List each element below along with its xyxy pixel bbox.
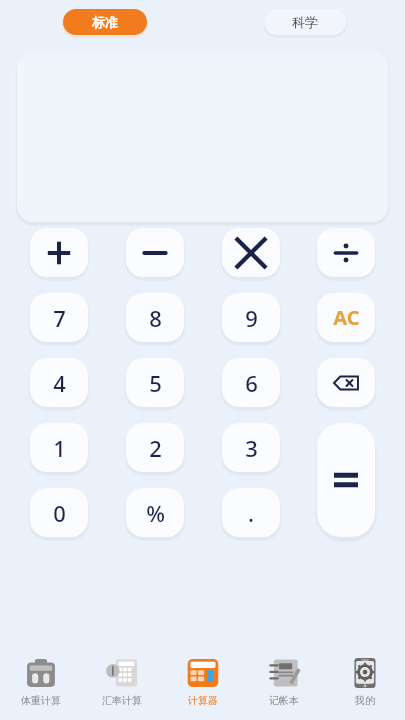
staticText: 标准 [92, 14, 118, 30]
staticText: 体重计算 [21, 694, 61, 707]
button[interactable]: 标准 [63, 9, 147, 35]
staticText: 记帐本 [269, 694, 299, 707]
button[interactable]: Plus [30, 228, 88, 277]
button[interactable]: Backspace [317, 358, 375, 407]
button[interactable]: % [126, 488, 184, 537]
staticText: . [248, 498, 254, 528]
button[interactable]: Divide [317, 228, 375, 277]
button[interactable]: 8 [126, 293, 184, 342]
button[interactable]: 体重计算 [0, 648, 81, 720]
button[interactable]: Equals [317, 423, 375, 537]
button[interactable]: 1 [30, 423, 88, 472]
button[interactable]: 记帐本 [243, 648, 324, 720]
staticText: 0 [53, 498, 66, 528]
button[interactable]: Multiply [222, 228, 280, 277]
button[interactable]: 科学 [264, 9, 346, 35]
staticText: 计算器 [188, 694, 218, 707]
button[interactable]: 5 [126, 358, 184, 407]
button[interactable]: 7 [30, 293, 88, 342]
staticText: 4 [53, 368, 66, 398]
staticText: 我的 [355, 694, 375, 707]
button[interactable]: 2 [126, 423, 184, 472]
staticText: 2 [149, 433, 162, 463]
button[interactable]: Minus [126, 228, 184, 277]
button[interactable]: AC [317, 293, 375, 342]
staticText: 7 [53, 303, 66, 333]
staticText: % [146, 498, 165, 528]
button[interactable]: 3 [222, 423, 280, 472]
staticText: AC [333, 304, 360, 331]
button[interactable]: 计算器 [162, 648, 243, 720]
staticText: 5 [149, 368, 162, 398]
button[interactable]: 0 [30, 488, 88, 537]
button[interactable]: 我的 [324, 648, 405, 720]
button[interactable]: 4 [30, 358, 88, 407]
staticText: 9 [245, 303, 258, 333]
staticText: 1 [53, 433, 66, 463]
button[interactable]: . [222, 488, 280, 537]
staticText: 科学 [292, 14, 318, 30]
staticText: 8 [149, 303, 162, 333]
staticText: 3 [245, 433, 258, 463]
button[interactable]: 9 [222, 293, 280, 342]
button[interactable]: 6 [222, 358, 280, 407]
staticText: 汇率计算 [102, 694, 142, 707]
staticText: 6 [245, 368, 258, 398]
button[interactable]: 汇率计算 [81, 648, 162, 720]
